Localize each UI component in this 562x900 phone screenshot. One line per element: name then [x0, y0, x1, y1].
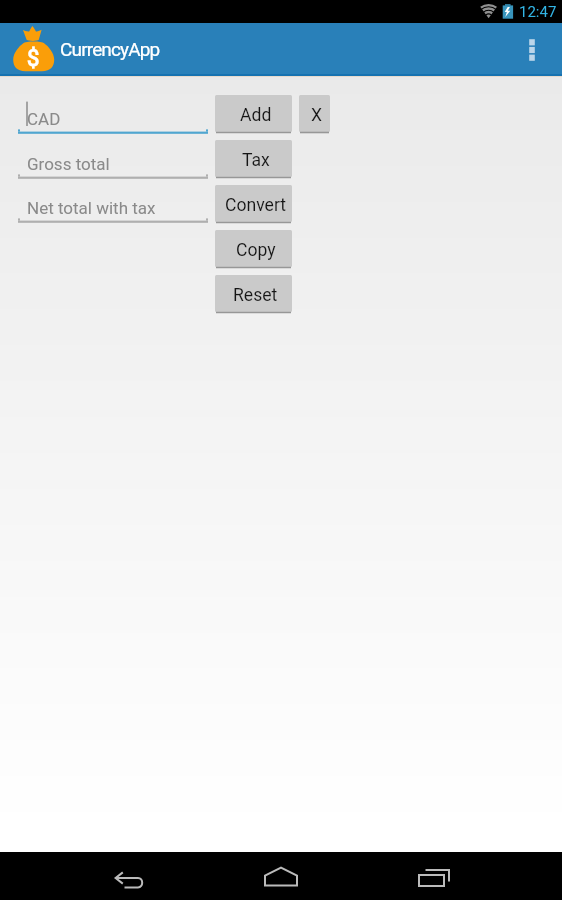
staticText: Gross total [27, 154, 110, 174]
staticText: $ [27, 46, 40, 72]
staticText: CAD [27, 109, 61, 129]
button[interactable]: Copy [215, 230, 292, 269]
button[interactable]: Add [215, 95, 292, 134]
staticText: X [311, 105, 323, 126]
staticText: CurrencyApp [60, 38, 160, 60]
button[interactable]: Reset [215, 275, 292, 314]
button[interactable]: Gross total [18, 143, 208, 179]
button[interactable]: Back [106, 854, 156, 900]
staticText: Net total with tax [27, 198, 156, 218]
staticText: Add [240, 105, 272, 126]
staticText: Convert [225, 195, 287, 216]
button[interactable]: Net total with tax [18, 187, 208, 223]
button[interactable]: CAD [18, 98, 208, 134]
button[interactable]: Recent apps [408, 854, 458, 900]
button[interactable]: Home [256, 854, 306, 900]
button[interactable]: X [299, 95, 330, 134]
button[interactable]: Tax [215, 140, 292, 179]
button[interactable]: More options [510, 24, 554, 75]
staticText: 12:47 [519, 3, 557, 21]
staticText: Reset [233, 285, 278, 306]
button[interactable]: Convert [215, 185, 292, 224]
staticText: Copy [236, 240, 276, 261]
staticText: Tax [242, 150, 270, 171]
